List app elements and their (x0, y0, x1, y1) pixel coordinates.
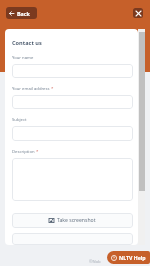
button[interactable]: NLTV Help (107, 251, 150, 264)
button[interactable] (12, 64, 133, 78)
button[interactable]: Take screenshot (12, 213, 133, 228)
staticText: Description (12, 149, 35, 155)
button[interactable] (12, 95, 133, 109)
button[interactable]: Close (133, 8, 143, 18)
staticText: Your email address (12, 86, 50, 92)
staticText: Contact us (12, 39, 42, 47)
staticText: Take screenshot (57, 217, 96, 224)
staticText: * (50, 86, 54, 92)
staticText: NLTV Help (119, 254, 146, 261)
button[interactable]: Back (6, 7, 37, 19)
staticText: ©Nab (89, 259, 101, 265)
staticText: Subject (12, 117, 27, 123)
staticText: * (35, 149, 39, 155)
staticText: Back (17, 10, 30, 17)
button[interactable] (12, 233, 133, 245)
button[interactable] (12, 158, 133, 201)
staticText: Your name (12, 55, 34, 61)
button[interactable] (12, 126, 133, 141)
